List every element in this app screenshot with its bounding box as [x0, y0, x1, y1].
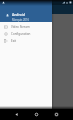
staticText: Marquis 2016	[12, 18, 30, 22]
button[interactable]: Video Stream	[0, 23, 52, 30]
staticText: Configuration	[11, 32, 31, 36]
staticText: Exit	[11, 39, 17, 43]
button[interactable]: Back	[9, 109, 23, 120]
button[interactable]: Configuration	[0, 30, 52, 37]
button[interactable]: Exit	[0, 37, 52, 44]
button[interactable]: Home	[29, 109, 43, 120]
staticText: Android	[12, 12, 25, 17]
staticText: Video Stream	[11, 25, 30, 29]
button[interactable]: Recents	[49, 109, 63, 120]
